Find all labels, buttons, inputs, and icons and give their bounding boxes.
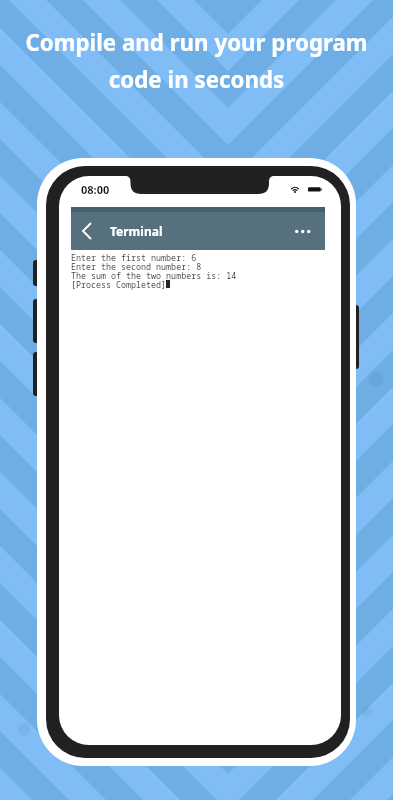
- staticText: Compile and run your program code in sec…: [25, 27, 368, 94]
- staticText: 08:00: [81, 182, 110, 197]
- staticText: Enter the first number: 6 Enter the seco…: [71, 252, 237, 290]
- button[interactable]: More options: [289, 217, 317, 245]
- staticText: Terminal: [110, 223, 163, 239]
- button[interactable]: Back: [74, 218, 100, 244]
